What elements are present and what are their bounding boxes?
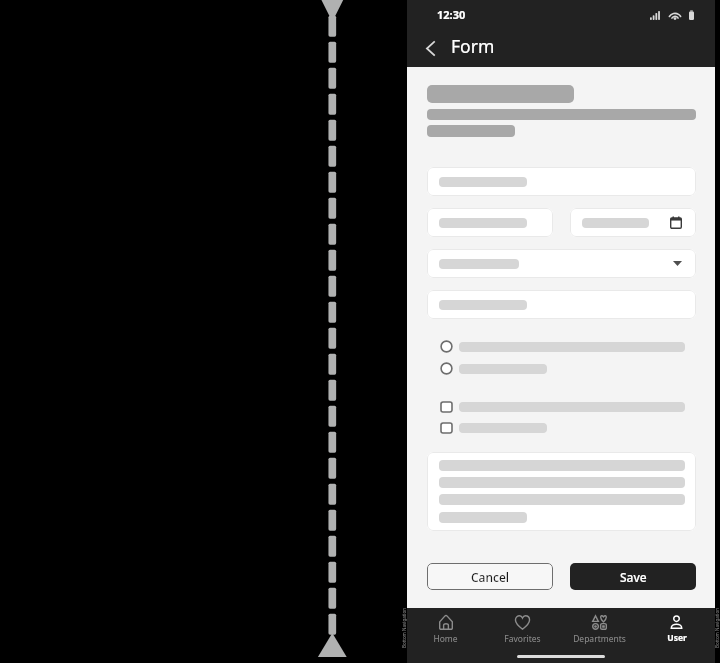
staticText: 12:30 — [437, 7, 466, 22]
button[interactable] — [427, 452, 696, 531]
button[interactable] — [570, 208, 696, 237]
staticText: Bottom Navigation — [401, 608, 407, 648]
button[interactable] — [427, 421, 696, 434]
button[interactable] — [427, 340, 696, 353]
button[interactable]: User — [638, 615, 715, 644]
button[interactable] — [427, 400, 696, 413]
button[interactable]: Home — [407, 615, 484, 645]
button[interactable] — [427, 167, 696, 196]
staticText: Form — [451, 34, 495, 58]
staticText: Cancel — [471, 569, 510, 585]
button[interactable]: Back — [416, 34, 444, 62]
button[interactable]: Favorites — [484, 615, 561, 645]
staticText: Favorites — [504, 633, 541, 645]
staticText: Home — [433, 633, 458, 645]
button[interactable] — [427, 208, 553, 237]
button[interactable] — [427, 290, 696, 319]
button[interactable] — [427, 362, 696, 375]
staticText: User — [667, 632, 687, 644]
button[interactable]: Save — [570, 563, 696, 590]
staticText: Save — [620, 569, 647, 585]
staticText: Bottom Navigation — [714, 608, 720, 648]
button[interactable] — [427, 249, 696, 278]
button[interactable]: Cancel — [427, 563, 553, 590]
button[interactable]: Departments — [561, 615, 638, 645]
staticText: Departments — [573, 633, 626, 645]
